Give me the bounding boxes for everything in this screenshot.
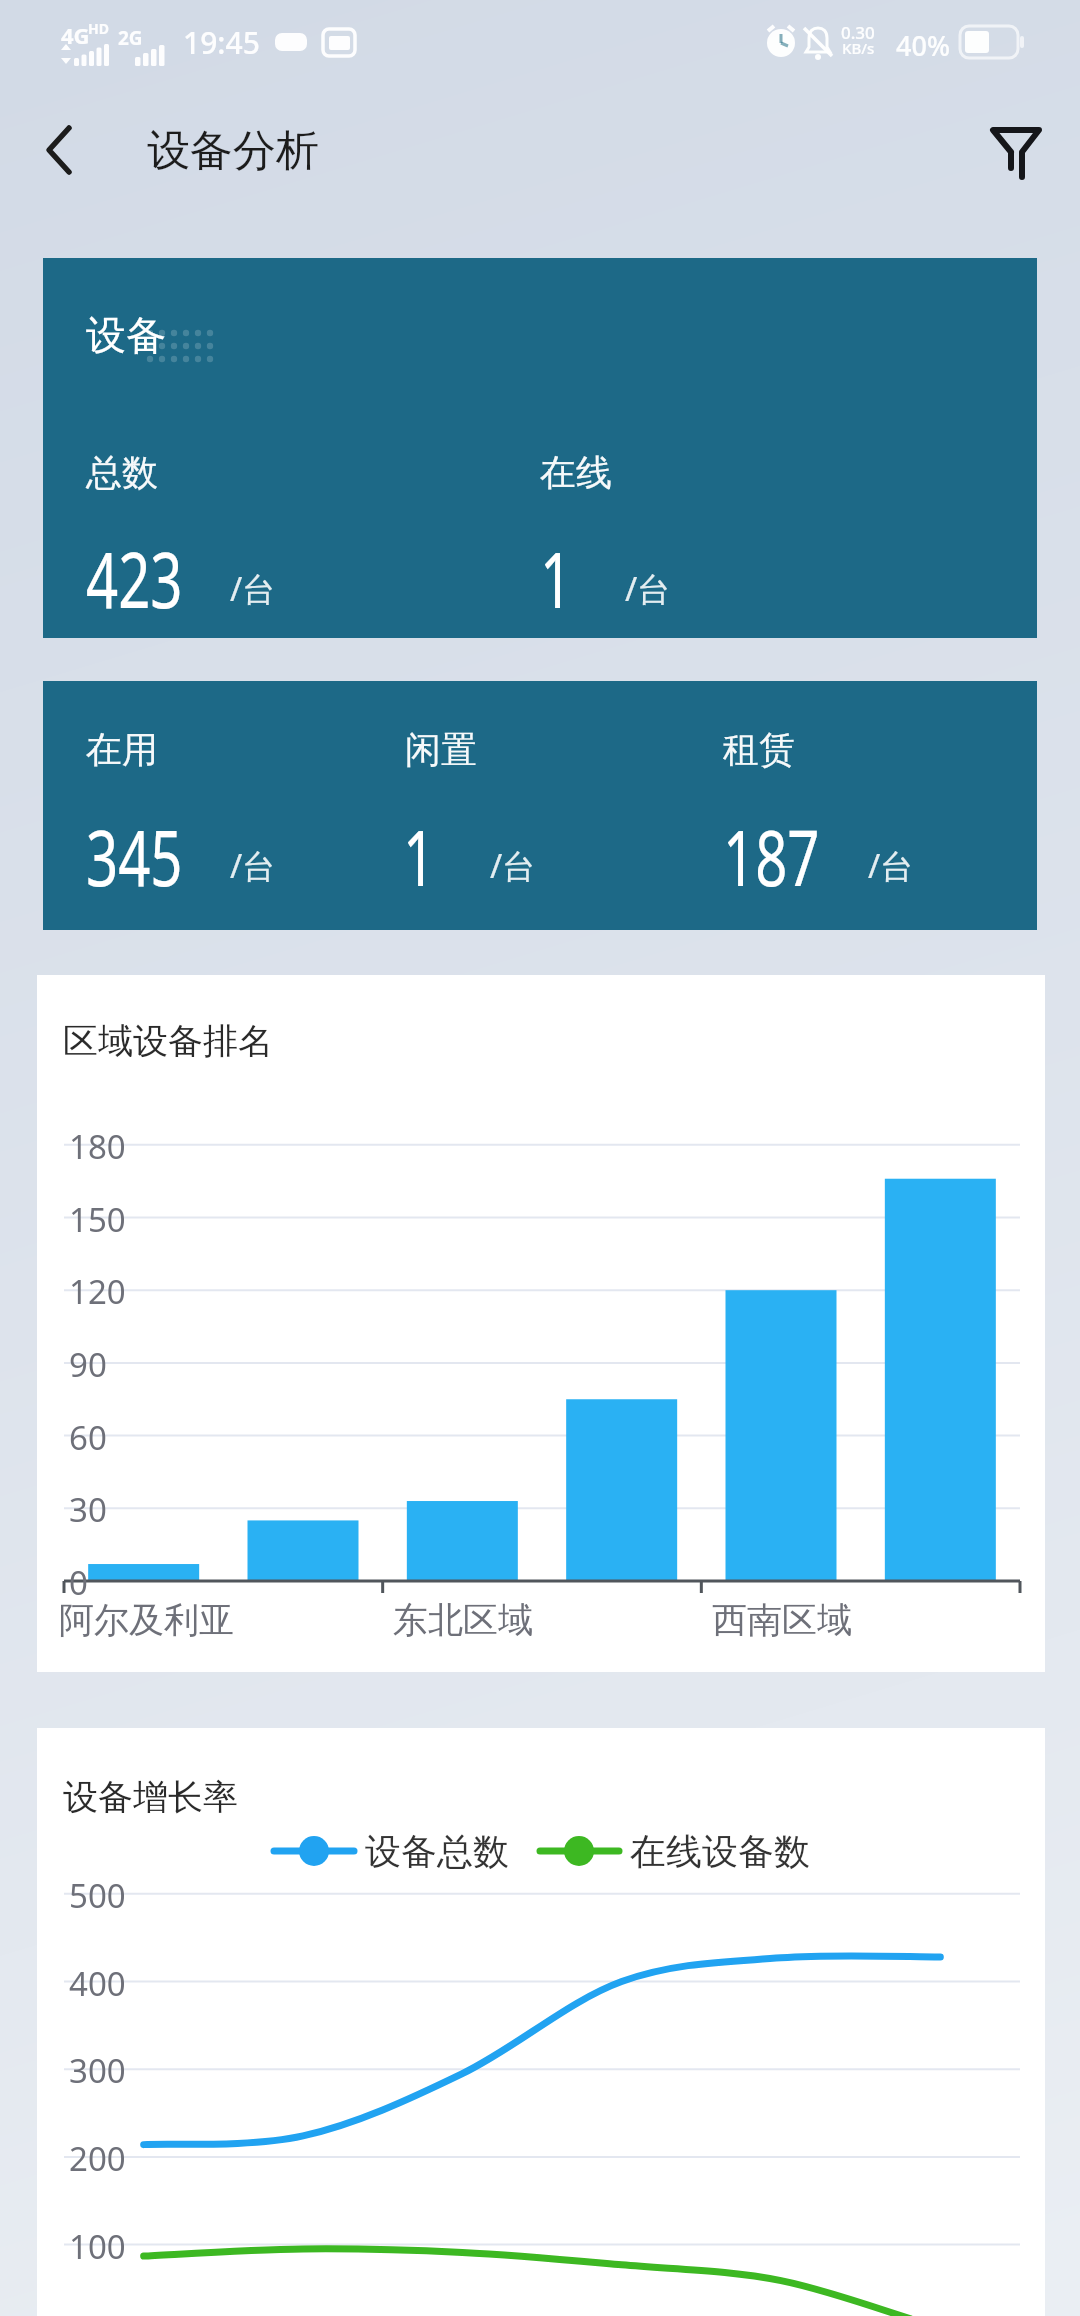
staticText: 阿尔及利亚 [59, 1598, 234, 1642]
staticText: 0.30 [841, 21, 875, 44]
staticText: /台 [625, 566, 671, 611]
staticText: 在线 [540, 450, 612, 495]
staticText: 1 [540, 527, 573, 631]
staticText: 30 [69, 1487, 107, 1532]
staticText: 4G [61, 20, 90, 50]
staticText: 在用 [86, 727, 158, 772]
button[interactable] [975, 110, 1055, 190]
staticText: 60 [69, 1415, 107, 1460]
staticText: 423 [86, 527, 183, 631]
staticText: /台 [230, 566, 276, 611]
staticText: 400 [69, 1961, 126, 2006]
staticText: 设备 [86, 310, 166, 360]
staticText: HD [88, 19, 109, 38]
staticText: 180 [69, 1124, 126, 1169]
staticText: 设备分析 [147, 124, 319, 178]
button[interactable]: 区域设备排名 [37, 975, 1045, 1672]
staticText: 19:45 [183, 22, 260, 63]
staticText: 120 [69, 1269, 126, 1314]
staticText: 187 [723, 805, 820, 909]
staticText: /台 [230, 843, 276, 888]
staticText: /台 [868, 843, 914, 888]
staticText: 闲置 [405, 727, 477, 772]
staticText: KB/s [842, 38, 875, 58]
button[interactable]: 在用 [43, 681, 1037, 930]
staticText: 2G [118, 25, 143, 51]
button[interactable]: 设备增长率 [37, 1728, 1045, 2316]
staticText: 500 [69, 1873, 126, 1918]
staticText: 租赁 [723, 727, 795, 772]
staticText: 150 [69, 1197, 126, 1242]
button[interactable]: 设备 [43, 258, 1037, 638]
staticText: 1 [403, 805, 436, 909]
staticText: 90 [69, 1342, 107, 1387]
button[interactable] [30, 115, 90, 185]
staticText: 西南区域 [712, 1598, 852, 1642]
staticText: 在线设备数 [630, 1829, 810, 1874]
staticText: 200 [69, 2136, 126, 2181]
staticText: 100 [69, 2224, 126, 2269]
staticText: 345 [86, 805, 183, 909]
staticText: 设备增长率 [63, 1775, 238, 1819]
staticText: 300 [69, 2048, 126, 2093]
staticText: 40% [896, 27, 950, 64]
staticText: 区域设备排名 [63, 1019, 273, 1063]
staticText: 0 [69, 1560, 88, 1605]
staticText: 东北区域 [393, 1598, 533, 1642]
staticText: 设备总数 [365, 1829, 509, 1874]
staticText: 总数 [86, 450, 158, 495]
staticText: /台 [490, 843, 536, 888]
